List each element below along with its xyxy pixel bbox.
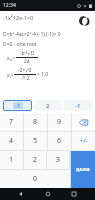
button[interactable]: 3 xyxy=(47,151,69,169)
button[interactable]: 5 xyxy=(24,132,47,150)
staticText: 4 xyxy=(9,136,14,146)
staticText: 5 xyxy=(33,136,38,146)
staticText: -1·2 xyxy=(21,75,30,82)
button[interactable]: Backspace xyxy=(72,113,95,131)
staticText: -1 xyxy=(15,102,21,110)
staticText: 2a xyxy=(24,58,30,65)
staticText: D=0 - one root xyxy=(3,41,37,48)
button[interactable]: -1 xyxy=(64,100,92,111)
staticText: -b+√D xyxy=(20,50,35,57)
staticText: 8 xyxy=(33,117,38,127)
button[interactable]: 2 xyxy=(34,100,62,111)
button[interactable]: 1 xyxy=(0,151,23,169)
button[interactable]: 6 xyxy=(48,132,71,150)
staticText: x₁₂= xyxy=(7,55,16,61)
button[interactable]: 8 xyxy=(24,113,47,131)
button[interactable]: 0 xyxy=(0,170,70,188)
staticText: 7 xyxy=(9,117,14,127)
staticText: +/- xyxy=(80,137,88,145)
staticText: -1 xyxy=(75,102,81,110)
staticText: 2 xyxy=(33,155,38,165)
button[interactable]: 2 xyxy=(24,151,46,169)
staticText: 12:34 xyxy=(3,2,16,9)
button[interactable]: Toggle dark mode xyxy=(78,14,92,28)
button[interactable]: +/- xyxy=(72,132,95,150)
staticText: 9 xyxy=(57,117,62,127)
staticText: 3 xyxy=(56,155,61,165)
staticText: ДАЛЕЕ xyxy=(76,167,90,173)
staticText: -1x²+2x-1=0 xyxy=(3,14,78,21)
staticText: -2+√0 xyxy=(18,67,32,74)
button[interactable]: Recents xyxy=(68,188,80,200)
button[interactable]: 9 xyxy=(48,113,71,131)
button[interactable]: -1 xyxy=(3,100,32,111)
staticText: = 1.0 xyxy=(37,71,49,78)
staticText: 0 xyxy=(33,174,38,184)
button[interactable]: Home xyxy=(42,188,54,200)
button[interactable]: 7 xyxy=(0,113,23,131)
staticText: 6 xyxy=(57,136,62,146)
staticText: x₁= xyxy=(7,72,14,78)
staticText: 2 xyxy=(46,102,50,110)
staticText: D=b²-4ac=2²-4·(-1)·(-1)= 0 xyxy=(3,31,61,38)
staticText: 1 xyxy=(9,155,14,165)
button[interactable]: 4 xyxy=(0,132,23,150)
button[interactable]: Back xyxy=(15,188,27,200)
button[interactable]: ДАЛЕЕ xyxy=(71,151,95,188)
